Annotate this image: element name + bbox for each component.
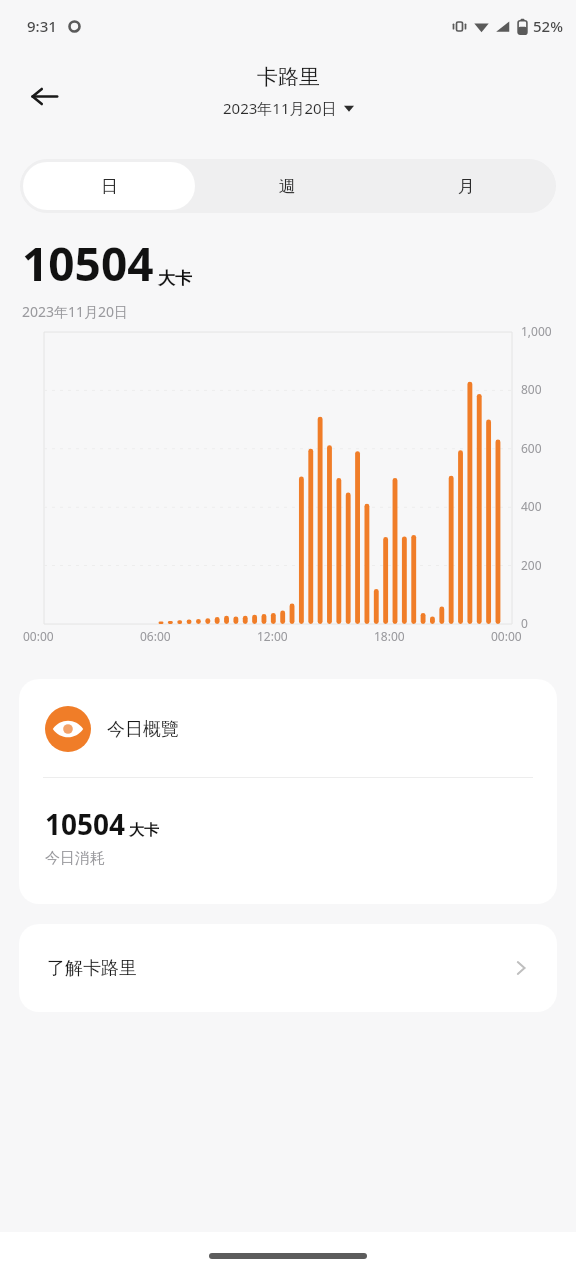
staticText: 2023年11月20日 <box>223 98 337 118</box>
staticText: 大卡 <box>129 821 159 840</box>
staticText: 2023年11月20日 <box>22 302 129 321</box>
staticText: 1,000 <box>521 323 552 339</box>
staticText: 06:00 <box>140 628 171 644</box>
staticText: 200 <box>521 557 542 573</box>
staticText: 52% <box>533 16 563 36</box>
staticText: 10504 <box>22 232 154 295</box>
staticText: 00:00 <box>491 628 522 644</box>
button[interactable]: 今日概覽 <box>19 679 557 904</box>
button[interactable]: 返回 <box>18 70 70 122</box>
staticText: 了解卡路里 <box>47 957 137 980</box>
button[interactable]: 2023年11月20日 <box>219 96 358 120</box>
button[interactable]: 週 <box>201 162 374 210</box>
staticText: 800 <box>521 381 542 397</box>
button[interactable]: 月 <box>380 162 553 210</box>
button[interactable]: 了解卡路里 <box>19 924 557 1012</box>
staticText: 週 <box>279 176 296 197</box>
staticText: 日 <box>101 176 118 197</box>
staticText: 18:00 <box>374 628 405 644</box>
staticText: 9:31 <box>27 16 57 36</box>
staticText: 10504 <box>45 805 126 843</box>
staticText: 月 <box>458 176 475 197</box>
staticText: 卡路里 <box>257 64 320 90</box>
staticText: 00:00 <box>23 628 54 644</box>
staticText: 12:00 <box>257 628 288 644</box>
button[interactable]: 日 <box>23 162 195 210</box>
staticText: 大卡 <box>158 268 192 289</box>
staticText: 0 <box>521 615 528 631</box>
staticText: 今日消耗 <box>45 849 105 868</box>
staticText: 今日概覽 <box>107 718 179 741</box>
staticText: 600 <box>521 440 542 456</box>
staticText: 400 <box>521 498 542 514</box>
